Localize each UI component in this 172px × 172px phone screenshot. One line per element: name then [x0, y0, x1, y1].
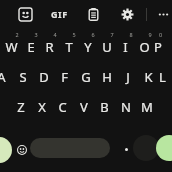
staticText: 2 — [15, 31, 19, 38]
button[interactable]: Z — [10, 92, 31, 122]
button[interactable]: F — [54, 62, 75, 92]
button[interactable]: Backspace — [133, 135, 159, 161]
staticText: L — [159, 68, 163, 86]
button[interactable]: J — [117, 62, 138, 92]
button[interactable]: 5 — [59, 30, 78, 60]
button[interactable]: More options — [155, 3, 172, 25]
button[interactable]: K — [138, 62, 159, 92]
staticText: O — [139, 38, 150, 56]
staticText: H — [102, 68, 112, 86]
staticText: T — [65, 38, 73, 56]
staticText: M — [141, 98, 153, 116]
button[interactable]: G — [75, 62, 96, 92]
staticText: B — [100, 98, 109, 116]
button[interactable]: D — [33, 62, 54, 92]
staticText: W — [5, 38, 18, 56]
staticText: I — [123, 38, 128, 56]
staticText: 5 — [72, 31, 76, 38]
staticText: E — [27, 38, 35, 56]
button[interactable]: 2 — [2, 30, 21, 60]
staticText: U — [102, 38, 112, 56]
button[interactable]: M — [136, 92, 157, 122]
button[interactable]: Enter — [156, 135, 172, 161]
button[interactable]: GIF — [48, 3, 70, 25]
button[interactable]: S — [12, 62, 33, 92]
staticText: V — [80, 98, 88, 116]
button[interactable]: Emoji — [12, 140, 32, 160]
button[interactable]: V — [73, 92, 94, 122]
staticText: N — [121, 98, 131, 116]
button[interactable]: C — [52, 92, 73, 122]
button[interactable]: 3 — [21, 30, 40, 60]
staticText: 6 — [91, 31, 95, 38]
staticText: K — [144, 68, 153, 86]
button[interactable]: Settings — [116, 3, 138, 25]
button[interactable]: Symbols — [0, 137, 12, 163]
button[interactable]: 9 — [135, 30, 154, 60]
button[interactable]: 7 — [97, 30, 116, 60]
button[interactable]: Period — [118, 141, 134, 157]
staticText: Z — [17, 98, 25, 116]
button[interactable]: Space — [30, 138, 110, 158]
staticText: J — [126, 68, 130, 86]
staticText: Y — [84, 38, 92, 56]
staticText: C — [58, 98, 67, 116]
button[interactable]: X — [31, 92, 52, 122]
button[interactable]: 4 — [40, 30, 59, 60]
button[interactable]: 8 — [116, 30, 135, 60]
button[interactable]: L — [159, 62, 163, 92]
button[interactable]: Clipboard — [82, 3, 104, 25]
button[interactable]: B — [94, 92, 115, 122]
staticText: D — [39, 68, 49, 86]
staticText: 8 — [129, 31, 133, 38]
staticText: R — [45, 38, 54, 56]
staticText: A — [0, 68, 6, 86]
staticText: 7 — [110, 31, 114, 38]
button[interactable]: Stickers — [14, 3, 36, 25]
button[interactable]: N — [115, 92, 136, 122]
staticText: S — [19, 68, 27, 86]
staticText: F — [61, 68, 68, 86]
staticText: 3 — [34, 31, 38, 38]
button[interactable]: A — [0, 62, 12, 92]
button[interactable]: 6 — [78, 30, 97, 60]
staticText: 0 — [159, 31, 160, 38]
staticText: X — [38, 98, 46, 116]
staticText: 4 — [53, 31, 57, 38]
staticText: G — [81, 68, 91, 86]
button[interactable]: H — [96, 62, 117, 92]
staticText: GIF — [51, 8, 68, 20]
staticText: 9 — [148, 31, 152, 38]
